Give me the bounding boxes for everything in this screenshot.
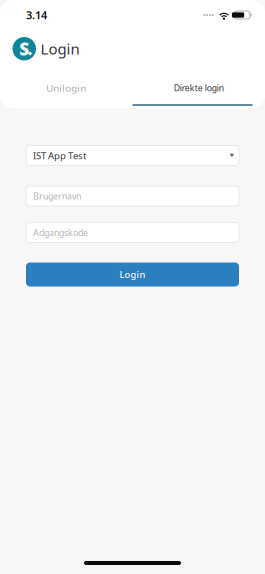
- staticText: Login: [40, 39, 79, 59]
- staticText: 3.14: [26, 8, 47, 22]
- button[interactable]: Brugernavn: [26, 186, 239, 206]
- button[interactable]: Login: [26, 262, 239, 286]
- staticText: Direkte login: [174, 82, 224, 94]
- staticText: Login: [119, 268, 145, 281]
- staticText: Unilogin: [46, 81, 86, 95]
- staticText: Adgangskode: [33, 226, 88, 238]
- staticText: IST App Test: [33, 149, 86, 162]
- button[interactable]: Adgangskode: [26, 222, 239, 242]
- button[interactable]: IST App Test: [26, 145, 239, 165]
- staticText: S: [19, 37, 29, 60]
- staticText: Brugernavn: [33, 190, 81, 202]
- button[interactable]: Unilogin: [0, 82, 132, 108]
- button[interactable]: Direkte login: [132, 82, 265, 108]
